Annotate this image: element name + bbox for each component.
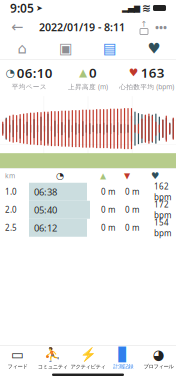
staticText: ⚡ — [79, 347, 96, 362]
staticText: 2.0 — [5, 204, 17, 215]
staticText: ▂▄▆ — [122, 3, 140, 13]
staticText: ⌂ — [17, 40, 26, 57]
button[interactable]: Heart rate — [132, 38, 176, 59]
staticText: ➤ — [36, 3, 43, 13]
staticText: ▼ — [124, 171, 130, 180]
staticText: km — [5, 171, 15, 180]
staticText: ▭ — [11, 347, 24, 362]
staticText: ♥ — [151, 170, 159, 181]
staticText: ••• — [155, 20, 167, 34]
button[interactable]: ▭ — [0, 345, 35, 371]
staticText: 0 m — [101, 204, 115, 215]
staticText: ≋ — [142, 2, 151, 14]
staticText: アクティビティ — [70, 363, 105, 370]
staticText: 0 m — [101, 222, 115, 233]
staticText: 心拍数平均 (bpm) — [119, 82, 174, 91]
button[interactable]: 1.0 — [0, 183, 176, 201]
staticText: ◔ — [6, 67, 15, 79]
button[interactable]: Map — [0, 38, 44, 59]
button[interactable]: More — [152, 18, 170, 36]
staticText: 上昇高度 (m) — [68, 82, 108, 91]
button[interactable]: Share — [136, 18, 152, 36]
staticText: 0 m — [125, 204, 139, 215]
staticText: 計測記録 — [113, 363, 133, 370]
staticText: ▲ — [79, 66, 87, 78]
staticText: ▲ — [100, 171, 106, 180]
staticText: プロフィール — [143, 363, 173, 370]
staticText: 05:40 — [34, 204, 57, 216]
staticText: 0 m — [125, 222, 139, 233]
staticText: ← — [11, 19, 23, 35]
staticText: コミュニティ — [38, 363, 68, 370]
staticText: 2.5 — [5, 222, 17, 233]
staticText: ↑ — [140, 19, 147, 29]
button[interactable]: 2.0 — [0, 201, 176, 219]
staticText: ♥ — [129, 66, 139, 78]
staticText: 163 — [141, 64, 165, 81]
staticText: 06:12 — [34, 222, 57, 234]
staticText: 0 — [89, 64, 97, 81]
staticText: 0 m — [125, 186, 139, 197]
button[interactable]: ⛹ — [35, 345, 70, 371]
staticText: 172 bpm — [154, 199, 171, 220]
staticText: 06:10 — [17, 64, 53, 82]
button[interactable]: Splits — [88, 38, 132, 59]
staticText: ♥ — [147, 40, 160, 57]
button[interactable]: ⚡ — [70, 345, 106, 371]
staticText: 154 bpm — [154, 217, 171, 238]
button[interactable]: Photos — [44, 38, 88, 59]
staticText: ▣ — [59, 40, 73, 57]
staticText: 06:38 — [34, 186, 57, 198]
staticText: 2022/01/19 - 8:11 — [39, 20, 125, 34]
staticText: 平均ペース — [12, 83, 47, 91]
staticText: ⛹ — [44, 347, 61, 362]
staticText: フィード — [8, 363, 28, 370]
button[interactable]: ▊ — [106, 345, 141, 371]
button[interactable]: ◕ — [141, 345, 176, 371]
button[interactable]: Back — [6, 17, 28, 37]
staticText: 9:05 — [10, 0, 34, 16]
button[interactable]: 2.5 — [0, 219, 176, 237]
staticText: ◔ — [56, 170, 64, 181]
staticText: 0 m — [101, 186, 115, 197]
staticText: ▤ — [103, 40, 117, 57]
staticText: 1.0 — [5, 186, 17, 197]
staticText: 162 bpm — [154, 181, 171, 202]
staticText: ◕ — [152, 347, 164, 362]
staticText: ▊ — [118, 347, 128, 362]
